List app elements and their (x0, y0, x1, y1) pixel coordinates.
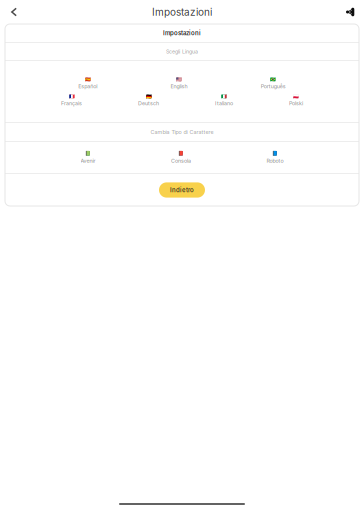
staticText: 📗 (85, 151, 91, 156)
staticText: 🇮🇹 (221, 93, 227, 99)
staticText: 🇵🇱 (293, 93, 299, 99)
button[interactable]: 🇺🇸 (170, 77, 187, 89)
staticText: Polski (289, 100, 303, 106)
staticText: 🇧🇷 (270, 77, 276, 82)
staticText: English (170, 83, 187, 89)
staticText: Consola (171, 157, 191, 164)
staticText: Avenir (80, 157, 95, 164)
staticText: Italiano (215, 100, 233, 106)
button[interactable]: 📘 (266, 151, 283, 164)
staticText: Français (61, 100, 82, 106)
staticText: 🇫🇷 (68, 93, 74, 99)
button[interactable]: 📕 (171, 151, 191, 164)
staticText: Indietro (170, 186, 194, 194)
button[interactable]: Back (3, 1, 25, 23)
button[interactable]: 🇪🇸 (78, 77, 97, 89)
staticText: Roboto (266, 157, 283, 164)
staticText: 🇪🇸 (85, 77, 91, 82)
staticText: 📕 (178, 151, 184, 156)
button[interactable]: 📗 (80, 151, 95, 164)
button[interactable]: Share (339, 1, 361, 23)
button[interactable]: Indietro (159, 182, 205, 198)
staticText: Impostazioni (152, 6, 212, 18)
staticText: 🇩🇪 (145, 93, 151, 99)
button[interactable]: 🇮🇹 (215, 93, 233, 106)
staticText: Deutsch (138, 100, 159, 106)
button[interactable]: 🇧🇷 (261, 77, 286, 89)
button[interactable]: 🇵🇱 (289, 93, 303, 106)
staticText: Impostazioni (163, 29, 201, 37)
staticText: Español (78, 83, 97, 89)
staticText: Português (261, 83, 286, 89)
button[interactable]: 🇫🇷 (61, 93, 82, 106)
staticText: 🇺🇸 (176, 77, 182, 82)
staticText: Cambia Tipo di Carattere (150, 129, 213, 135)
staticText: Scegli Lingua (166, 48, 198, 55)
staticText: 📘 (272, 151, 278, 156)
button[interactable]: 🇩🇪 (138, 93, 159, 106)
